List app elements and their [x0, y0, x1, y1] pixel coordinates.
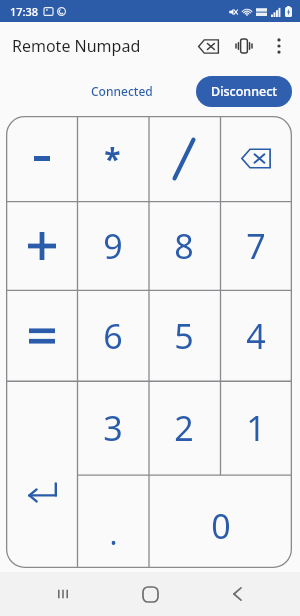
button[interactable]: 6: [77, 290, 148, 381]
staticText: Connected: [91, 83, 153, 99]
staticText: Remote Numpad: [12, 35, 141, 57]
button[interactable]: Asterisk: [77, 116, 148, 201]
button[interactable]: .: [77, 475, 149, 568]
staticText: 7: [246, 223, 266, 269]
button[interactable]: Backspace: [220, 116, 292, 201]
button[interactable]: Minus: [6, 116, 77, 201]
button[interactable]: 2: [148, 381, 220, 475]
staticText: 17:38: [10, 4, 39, 19]
staticText: 8: [174, 223, 194, 269]
button[interactable]: 3: [77, 381, 148, 475]
button[interactable]: Back: [213, 572, 261, 616]
button[interactable]: Disconnect: [196, 76, 292, 107]
button[interactable]: 8: [148, 201, 220, 290]
staticText: 1: [246, 405, 266, 451]
button[interactable]: Equals: [6, 290, 77, 381]
button[interactable]: Plus: [6, 201, 77, 290]
button[interactable]: 9: [77, 201, 148, 290]
button[interactable]: 0: [149, 475, 292, 568]
button[interactable]: Home: [126, 572, 174, 616]
staticText: 9: [103, 223, 123, 269]
button[interactable]: 5: [148, 290, 220, 381]
staticText: 2: [174, 405, 194, 451]
staticText: Disconnect: [211, 83, 278, 100]
staticText: 4: [246, 313, 266, 359]
staticText: 3: [103, 405, 123, 451]
button[interactable]: More options: [262, 29, 296, 63]
staticText: 5: [174, 313, 194, 359]
button[interactable]: Vibrate: [226, 28, 262, 64]
button[interactable]: Backspace: [190, 28, 226, 64]
button[interactable]: Divide: [148, 116, 220, 201]
staticText: *: [104, 138, 121, 179]
button[interactable]: Recents: [39, 572, 87, 616]
button[interactable]: 7: [220, 201, 292, 290]
button[interactable]: 1: [220, 381, 292, 475]
staticText: 0: [211, 503, 231, 549]
button[interactable]: Enter: [6, 381, 77, 568]
button[interactable]: 4: [220, 290, 292, 381]
staticText: .: [109, 513, 118, 554]
staticText: 6: [103, 313, 123, 359]
